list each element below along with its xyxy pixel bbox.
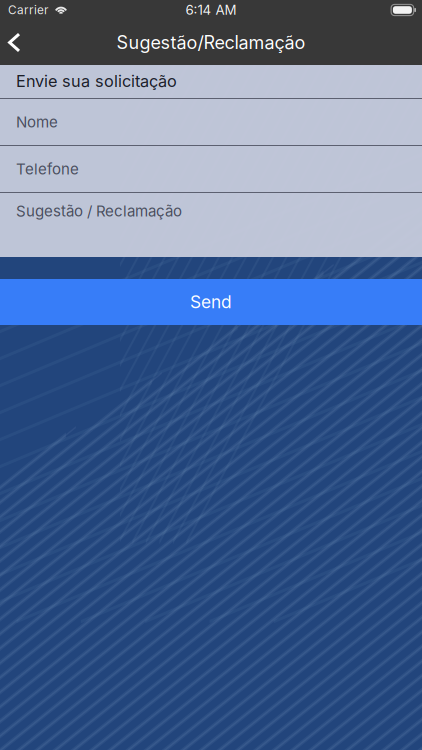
staticText: Sugestão / Reclamação bbox=[16, 202, 182, 220]
button[interactable]: Send bbox=[0, 279, 422, 325]
staticText: 6:14 AM bbox=[185, 2, 236, 18]
staticText: Telefone bbox=[16, 160, 79, 178]
staticText: Sugestão/Reclamação bbox=[116, 32, 305, 53]
button[interactable]: Back bbox=[0, 20, 36, 65]
button[interactable]: Telefone bbox=[0, 146, 422, 192]
staticText: Send bbox=[190, 291, 232, 312]
staticText: Carrier bbox=[8, 3, 48, 17]
button[interactable]: Sugestão / Reclamação bbox=[0, 193, 422, 258]
button[interactable]: Envie sua solicitação bbox=[0, 64, 422, 98]
button[interactable]: Nome bbox=[0, 99, 422, 145]
staticText: Nome bbox=[16, 113, 58, 131]
staticText: Envie sua solicitação bbox=[16, 71, 177, 91]
